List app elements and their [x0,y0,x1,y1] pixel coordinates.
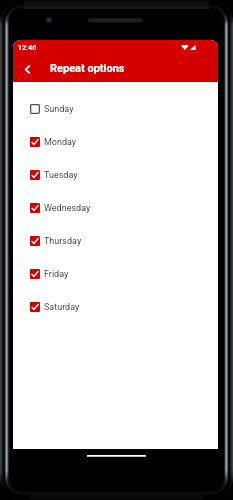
staticText: Monday [44,137,77,148]
button[interactable]: Thursday [13,224,218,257]
button[interactable]: Tuesday [13,158,218,191]
staticText: Tuesday [44,170,78,181]
staticText: Repeat options [50,62,125,75]
staticText: 12:46 [18,43,37,51]
staticText: Wednesday [44,203,91,214]
button[interactable]: Navigate up [13,57,42,82]
button[interactable]: Monday [13,125,218,158]
staticText: Sunday [44,104,74,115]
staticText: Friday [44,269,69,280]
staticText: Thursday [44,236,82,247]
button[interactable]: Sunday [13,92,218,125]
staticText: Saturday [44,302,80,313]
button[interactable]: Friday [13,257,218,290]
button[interactable]: Saturday [13,290,218,323]
button[interactable]: Wednesday [13,191,218,224]
